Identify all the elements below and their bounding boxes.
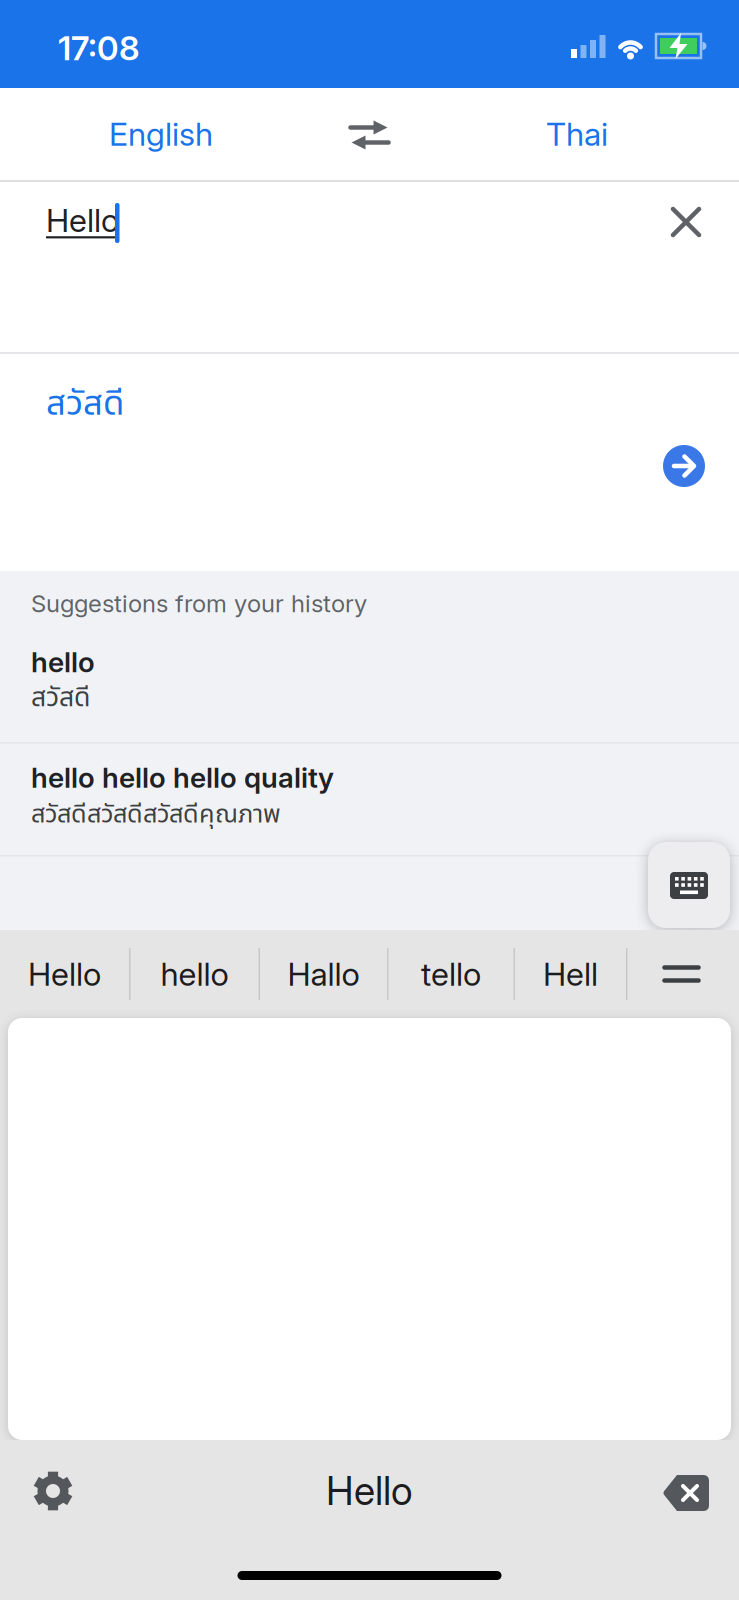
staticText: สวัสดีสวัสดีสวัสดีคุณภาพ: [31, 795, 281, 834]
button[interactable]: [627, 930, 735, 1018]
staticText: สวัสดี: [31, 678, 90, 718]
button[interactable]: Hallo: [260, 930, 387, 1018]
button[interactable]: Thai: [437, 88, 717, 180]
staticText: hello: [160, 955, 228, 993]
staticText: Suggestions from your history: [31, 589, 367, 618]
staticText: สวัสดี: [46, 378, 124, 430]
staticText: Hello: [326, 1468, 413, 1514]
button[interactable]: [648, 842, 730, 928]
staticText: hello: [31, 645, 95, 679]
button[interactable]: Hello: [0, 930, 129, 1018]
button[interactable]: Hell: [515, 930, 626, 1018]
button[interactable]: hello hello hello quality: [0, 743, 739, 854]
button[interactable]: [658, 194, 714, 250]
staticText: Hallo: [287, 955, 359, 993]
staticText: tello: [421, 955, 481, 993]
button[interactable]: [663, 445, 705, 487]
button[interactable]: [663, 1473, 709, 1513]
button[interactable]: [25, 1463, 81, 1519]
staticText: Hello: [46, 201, 119, 240]
button[interactable]: tello: [388, 930, 513, 1018]
button[interactable]: hello: [0, 630, 739, 742]
button[interactable]: hello: [130, 930, 258, 1018]
staticText: Hello: [28, 955, 101, 993]
staticText: Hell: [543, 955, 598, 993]
button[interactable]: [347, 118, 391, 152]
staticText: English: [109, 115, 213, 153]
staticText: hello hello hello quality: [31, 760, 334, 794]
button[interactable]: English: [21, 88, 301, 180]
staticText: Thai: [546, 115, 608, 153]
staticText: 17:08: [58, 28, 140, 68]
